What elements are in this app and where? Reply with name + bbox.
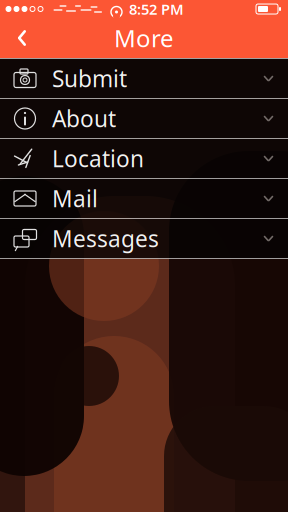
button[interactable]: Submit [0,59,288,98]
button[interactable]: Messages [0,219,288,258]
button[interactable]: Back [0,18,44,58]
staticText: Mail [52,183,98,213]
button[interactable]: About [0,99,288,138]
staticText: More [114,22,174,54]
staticText: About [52,103,116,133]
button[interactable]: Location [0,139,288,178]
staticText: Messages [52,223,159,253]
staticText: Location [52,143,144,173]
staticText: Submit [52,63,127,93]
button[interactable]: Mail [0,179,288,218]
staticText: 8:52 PM [129,0,184,19]
